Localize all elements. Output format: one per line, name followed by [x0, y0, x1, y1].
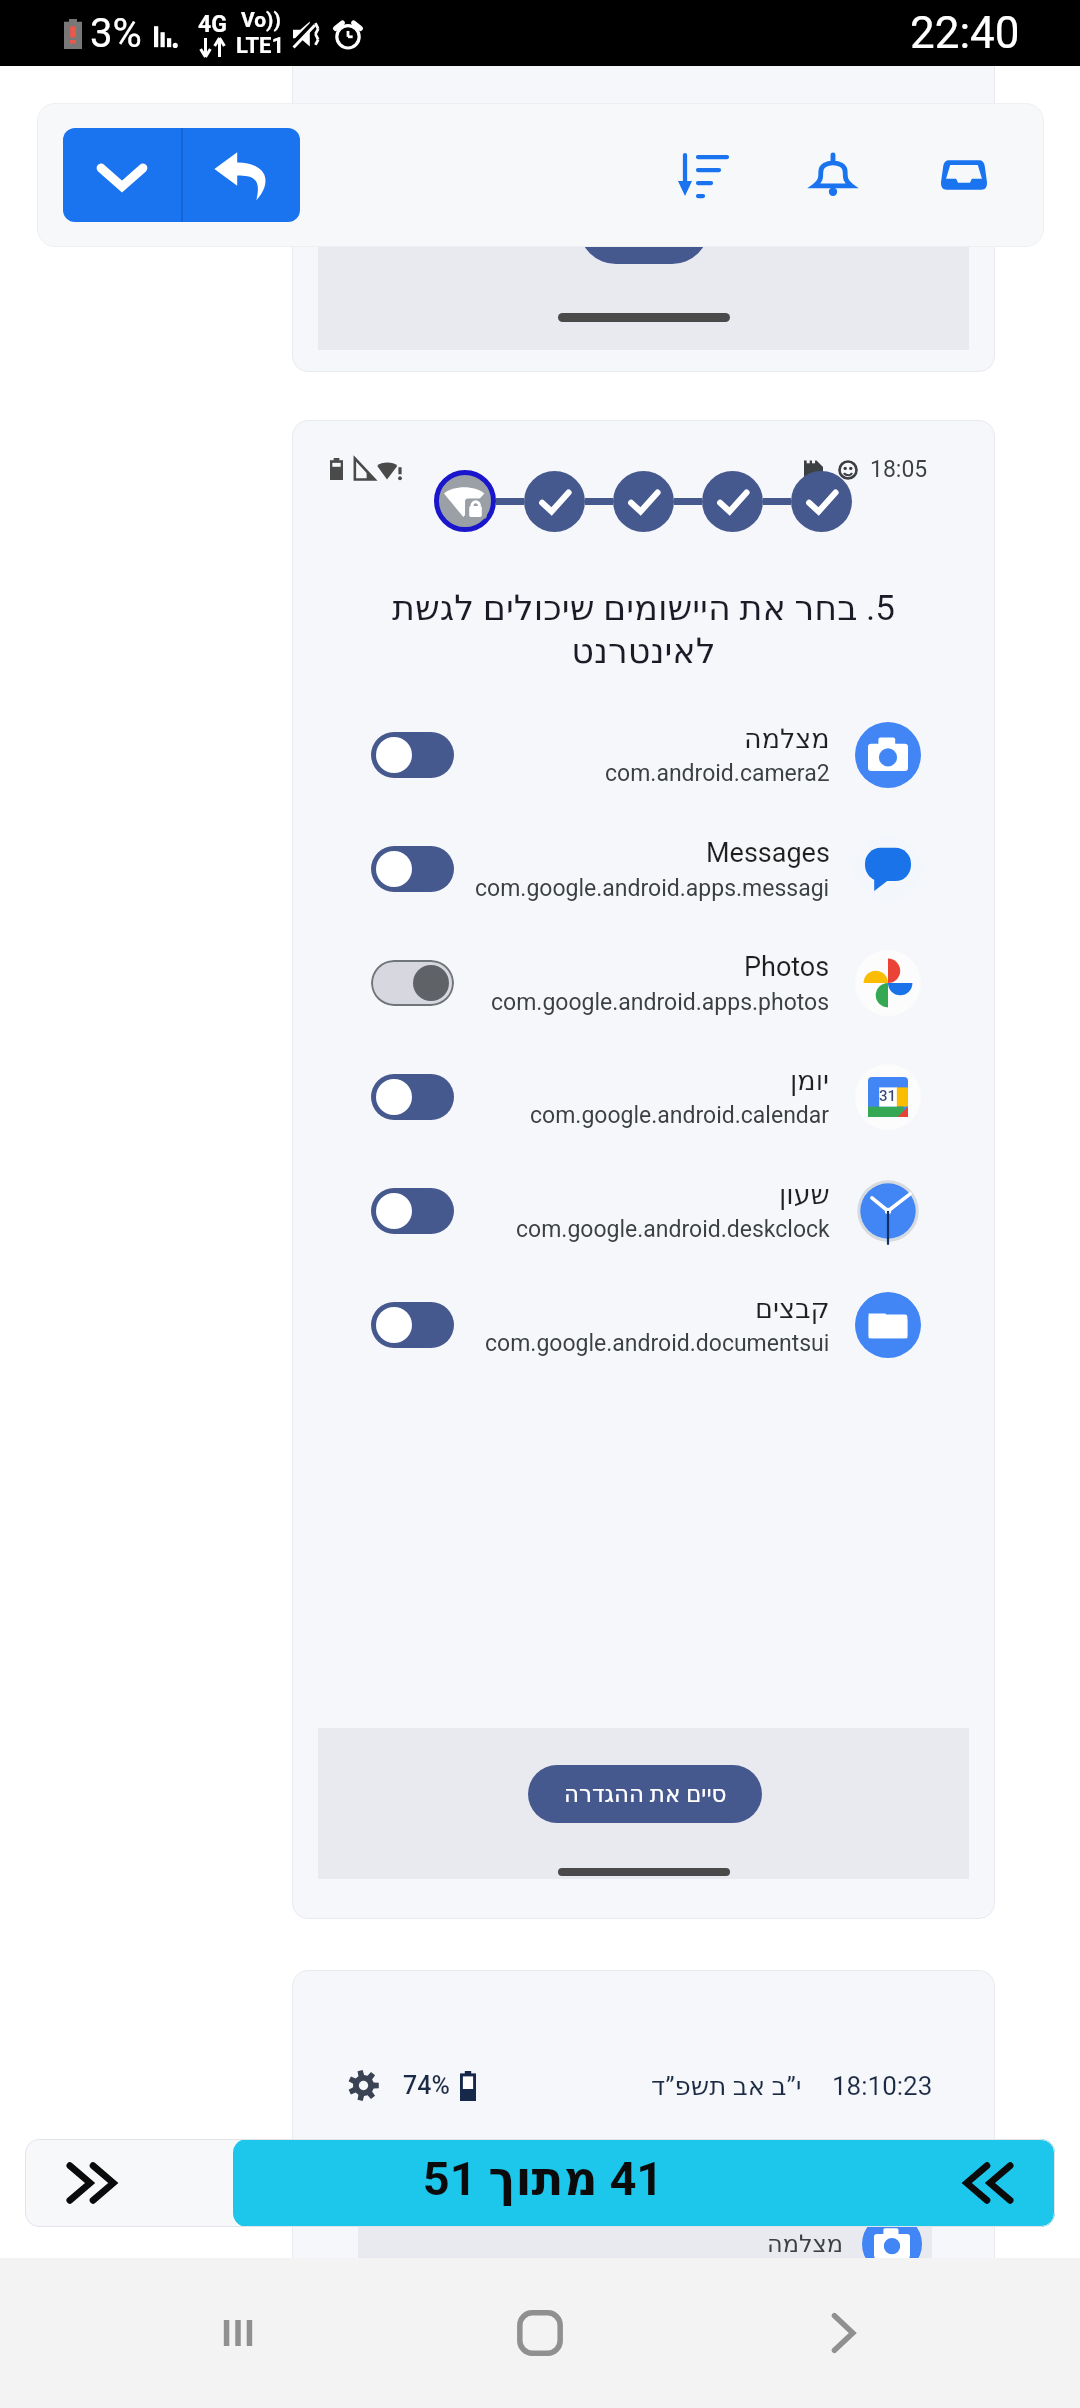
button[interactable]: Collapse	[63, 128, 181, 222]
button[interactable]: קבצים	[292, 1268, 995, 1382]
staticText: קבצים	[755, 1293, 830, 1324]
staticText: 5. בחר את היישומים שיכולים לגשת לאינטרנט	[346, 588, 941, 672]
staticText: 4G	[198, 11, 227, 38]
staticText: שעון	[779, 1179, 830, 1210]
staticText: 22:40	[910, 7, 1020, 59]
button[interactable]: 74%	[292, 1970, 995, 2390]
button[interactable]: שעון	[292, 1154, 995, 1268]
button[interactable]: סיים את ההגדרה	[528, 1765, 762, 1823]
staticText: com.google.android.documentsui	[485, 1330, 830, 1357]
button[interactable]: Previous	[943, 2139, 1031, 2227]
staticText: com.google.android.deskclock	[516, 1216, 830, 1243]
button[interactable]: Messages	[292, 812, 995, 926]
staticText: 3%	[90, 10, 142, 57]
staticText: סיים את ההגדרה	[564, 1781, 727, 1808]
staticText: LTE1	[236, 33, 285, 59]
staticText: יומן	[790, 1065, 830, 1096]
button[interactable]: Back	[794, 2288, 889, 2378]
staticText: Photos	[744, 951, 830, 983]
button[interactable]: מצלמה	[292, 698, 995, 812]
button[interactable]: Inbox	[918, 129, 1010, 221]
button[interactable]: Sort	[656, 129, 748, 221]
staticText: 41 מתוך 51	[343, 2151, 743, 2206]
button[interactable]: יומן	[292, 1040, 995, 1154]
button[interactable]: Next	[49, 2139, 137, 2227]
button[interactable]: Recents	[190, 2288, 285, 2378]
button[interactable]: Notifications	[787, 129, 879, 221]
staticText: מצלמה	[767, 2230, 844, 2258]
button[interactable]: 41 מתוך 51	[233, 2139, 1055, 2227]
staticText: com.android.camera2	[605, 760, 830, 787]
staticText: 18:05	[870, 456, 928, 483]
staticText: com.google.android.apps.messagi	[475, 875, 830, 902]
staticText: Vo))	[241, 8, 281, 33]
staticText: 18:10:23	[832, 2071, 933, 2101]
staticText: י”ב אב תשפ”ד	[651, 2071, 802, 2101]
staticText: Messages	[706, 837, 830, 869]
button[interactable]: 18:05	[292, 420, 995, 1919]
staticText: com.google.android.apps.photos	[491, 989, 830, 1016]
staticText: מצלמה	[744, 723, 830, 754]
staticText: 74%	[403, 2071, 450, 2100]
button[interactable]: Home	[492, 2288, 587, 2378]
button[interactable]: צא	[292, 0, 995, 372]
staticText: 31	[879, 1087, 897, 1105]
button[interactable]: Undo	[183, 128, 300, 222]
staticText: com.google.android.calendar	[530, 1102, 830, 1129]
button[interactable]: Photos	[292, 926, 995, 1040]
